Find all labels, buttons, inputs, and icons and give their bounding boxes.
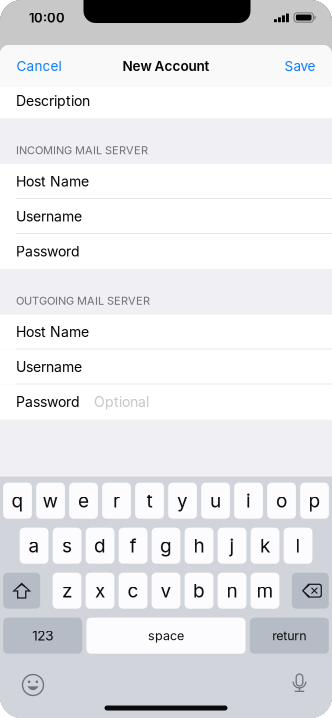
staticText: return	[272, 628, 306, 643]
button[interactable]: g	[152, 528, 180, 564]
button[interactable]: a	[20, 528, 48, 564]
button[interactable]: p	[300, 483, 329, 519]
button[interactable]: Description	[0, 87, 332, 118]
button[interactable]: 123	[3, 618, 82, 654]
button[interactable]: i	[234, 483, 263, 519]
button[interactable]: Host Name	[0, 164, 332, 199]
button[interactable]: v	[152, 573, 180, 609]
button[interactable]: b	[185, 573, 213, 609]
staticText: Username	[16, 208, 82, 225]
staticText: k	[260, 534, 270, 557]
staticText: a	[28, 534, 39, 557]
button[interactable]: k	[251, 528, 279, 564]
staticText: 10:00	[29, 10, 65, 26]
button[interactable]: Password	[0, 234, 332, 269]
staticText: New Account	[122, 58, 209, 74]
staticText: Cancel	[16, 58, 61, 74]
staticText: OUTGOING MAIL SERVER	[16, 294, 150, 307]
button[interactable]: t	[135, 483, 164, 519]
button[interactable]: Host Name	[0, 314, 332, 349]
staticText: Optional	[94, 393, 149, 410]
staticText: Username	[16, 358, 82, 375]
button[interactable]: e	[69, 483, 98, 519]
button[interactable]: q	[3, 483, 32, 519]
staticText: e	[78, 489, 89, 512]
button[interactable]: c	[119, 573, 147, 609]
staticText: space	[148, 628, 184, 643]
staticText: g	[160, 534, 172, 557]
button[interactable]: n	[218, 573, 246, 609]
button[interactable]: r	[102, 483, 131, 519]
staticText: v	[160, 579, 171, 602]
staticText: m	[256, 579, 273, 602]
staticText: l	[296, 534, 301, 557]
staticText: j	[229, 534, 234, 557]
button[interactable]: return	[250, 618, 329, 654]
staticText: w	[43, 489, 59, 512]
button[interactable]: Password	[0, 384, 332, 419]
staticText: Save	[284, 58, 315, 74]
staticText: Host Name	[16, 323, 89, 340]
button[interactable]: Save	[271, 45, 332, 87]
button[interactable]: u	[201, 483, 230, 519]
staticText: z	[62, 579, 72, 602]
staticText: Password	[16, 243, 80, 260]
staticText: i	[246, 489, 251, 512]
button[interactable]: Cancel	[0, 45, 74, 87]
staticText: f	[130, 534, 137, 557]
staticText: Host Name	[16, 173, 89, 190]
button[interactable]: Username	[0, 349, 332, 384]
button[interactable]: x	[86, 573, 114, 609]
button[interactable]: h	[185, 528, 213, 564]
staticText: c	[127, 579, 138, 602]
staticText: t	[146, 489, 152, 512]
staticText: h	[193, 534, 204, 557]
button[interactable]: Emoji keyboard	[13, 665, 52, 704]
staticText: o	[276, 489, 287, 512]
button[interactable]: space	[86, 618, 245, 654]
button[interactable]: j	[218, 528, 246, 564]
staticText: y	[177, 489, 188, 512]
staticText: r	[113, 489, 120, 512]
staticText: u	[210, 489, 221, 512]
staticText: p	[309, 489, 321, 512]
staticText: q	[12, 489, 24, 512]
staticText: 123	[32, 627, 53, 644]
button[interactable]: o	[267, 483, 296, 519]
staticText: b	[193, 579, 205, 602]
staticText: d	[94, 534, 106, 557]
staticText: n	[226, 579, 237, 602]
button[interactable]: l	[284, 528, 312, 564]
button[interactable]: m	[251, 573, 279, 609]
staticText: INCOMING MAIL SERVER	[16, 144, 148, 157]
button[interactable]: w	[36, 483, 65, 519]
staticText: Password	[16, 393, 80, 410]
button[interactable]: y	[168, 483, 197, 519]
button[interactable]: d	[86, 528, 114, 564]
button[interactable]: Username	[0, 199, 332, 234]
button[interactable]: s	[53, 528, 81, 564]
button[interactable]: z	[53, 573, 81, 609]
staticText: x	[95, 579, 105, 602]
button[interactable]: Delete	[292, 573, 329, 609]
staticText: Description	[16, 92, 90, 109]
button[interactable]: Dictation	[283, 665, 315, 703]
button[interactable]: f	[119, 528, 147, 564]
staticText: s	[62, 534, 72, 557]
button[interactable]: Shift	[3, 573, 40, 609]
